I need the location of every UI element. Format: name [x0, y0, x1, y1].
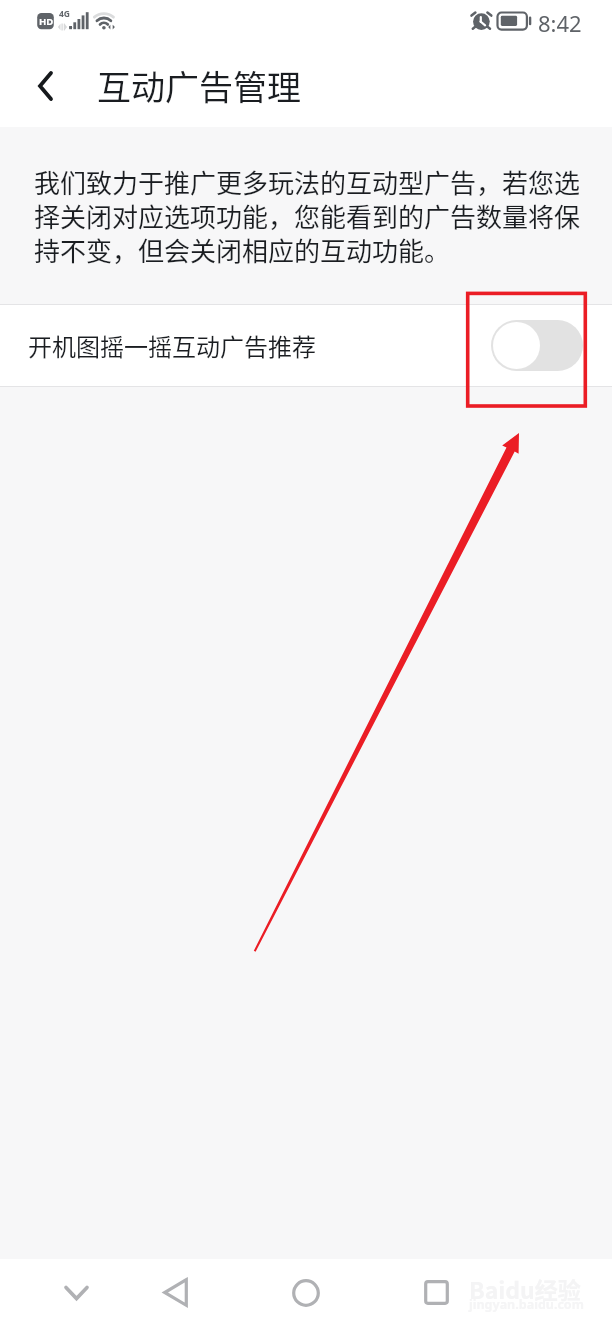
button[interactable]: 开机图摇一摇互动广告推荐	[0, 305, 612, 386]
staticText: 互动广告管理	[97, 61, 301, 110]
staticText: jingyan.baidu.com	[469, 1296, 584, 1313]
staticText: HD	[39, 15, 54, 28]
staticText: Baidu经验	[469, 1272, 581, 1305]
staticText: 我们致力于推广更多玩法的互动型广告，若您选 择关闭对应选项功能，您能看到的广告数…	[34, 163, 581, 269]
button[interactable]: Home	[258, 1259, 354, 1326]
button[interactable]: Recents	[388, 1259, 484, 1326]
button[interactable]: Toggle shake ad recommendation	[491, 320, 583, 371]
button[interactable]: Back	[0, 50, 91, 127]
button[interactable]: Back	[127, 1259, 223, 1326]
staticText: 8:42	[538, 8, 582, 38]
staticText: 开机图摇一摇互动广告推荐	[28, 328, 316, 363]
staticText: 4G	[59, 8, 71, 20]
button[interactable]: Hide keyboard	[28, 1259, 124, 1326]
